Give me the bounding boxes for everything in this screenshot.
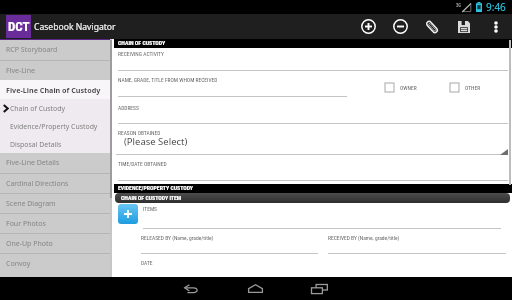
staticText: REASON OBTAINED: [118, 130, 161, 136]
button[interactable]: Scene Diagram: [0, 194, 114, 213]
staticText: Disposal Details: [10, 140, 62, 149]
button[interactable]: Disposal Details: [0, 135, 114, 153]
staticText: RECEIVED BY (Name, grade/title): [328, 235, 400, 241]
staticText: RECEIVING ACTIVITY: [118, 51, 164, 57]
staticText: DATE: [141, 260, 153, 266]
staticText: (Please Select): [124, 135, 188, 148]
button[interactable]: Five-Line Chain of Custody: [0, 80, 114, 99]
button[interactable]: Five-Line: [0, 61, 114, 80]
staticText: NAME, GRADE, TITLE FROM WHOM RECEIVED: [118, 77, 218, 83]
button[interactable]: Cardinal Directions: [0, 174, 114, 193]
button[interactable]: Add item: [118, 204, 138, 224]
button[interactable]: Save: [448, 14, 480, 39]
staticText: Scene Diagram: [6, 199, 56, 209]
staticText: Four Photos: [6, 219, 46, 229]
staticText: RELEASED BY (Name, grade/title): [141, 235, 214, 241]
staticText: Five-Line Chain of Custody: [6, 85, 101, 95]
staticText: ITEMS: [143, 206, 157, 212]
staticText: Convoy: [6, 259, 31, 269]
staticText: ADDRESS: [118, 105, 139, 111]
button[interactable]: Other checkbox: [450, 83, 459, 92]
staticText: TIME/DATE OBTAINED: [118, 161, 167, 167]
staticText: OTHER: [465, 85, 481, 91]
staticText: RCP Storyboard: [6, 45, 58, 55]
button[interactable]: Add: [352, 14, 384, 39]
staticText: One-Up Photo: [6, 239, 53, 249]
button[interactable]: Evidence/Property Custody: [0, 117, 114, 135]
staticText: Chain of Custody: [10, 104, 65, 113]
staticText: DCT: [8, 19, 30, 34]
staticText: CHAIN OF CUSTODY ITEM: [121, 195, 182, 202]
staticText: EVIDENCE/PROPERTY CUSTODY: [118, 185, 194, 192]
staticText: Casebook Navigator: [34, 21, 116, 33]
button[interactable]: Convoy: [0, 254, 114, 273]
button[interactable]: Four Photos: [0, 214, 114, 233]
button[interactable]: Recent apps: [298, 277, 340, 300]
button[interactable]: RCP Storyboard: [0, 40, 114, 60]
button[interactable]: More options: [480, 14, 512, 39]
staticText: 9:46: [486, 0, 506, 14]
button[interactable]: One-Up Photo: [0, 234, 114, 253]
staticText: Five-Line Details: [6, 158, 60, 168]
button[interactable]: Back: [170, 277, 212, 300]
button[interactable]: Reason obtained dropdown: [116, 135, 508, 155]
button[interactable]: Attach: [416, 14, 448, 39]
staticText: Cardinal Directions: [6, 179, 69, 189]
button[interactable]: Chain of Custody: [0, 99, 114, 117]
button[interactable]: Five-Line Details: [0, 153, 114, 173]
button[interactable]: App icon: [6, 15, 31, 38]
button[interactable]: Remove: [384, 14, 416, 39]
staticText: Evidence/Property Custody: [10, 122, 98, 131]
staticText: CHAIN OF CUSTODY: [118, 40, 166, 47]
button[interactable]: Home: [234, 277, 276, 300]
button[interactable]: Owner checkbox: [385, 83, 394, 92]
staticText: 3G: [456, 3, 461, 8]
staticText: Five-Line: [6, 66, 35, 76]
staticText: OWNER: [400, 85, 417, 91]
